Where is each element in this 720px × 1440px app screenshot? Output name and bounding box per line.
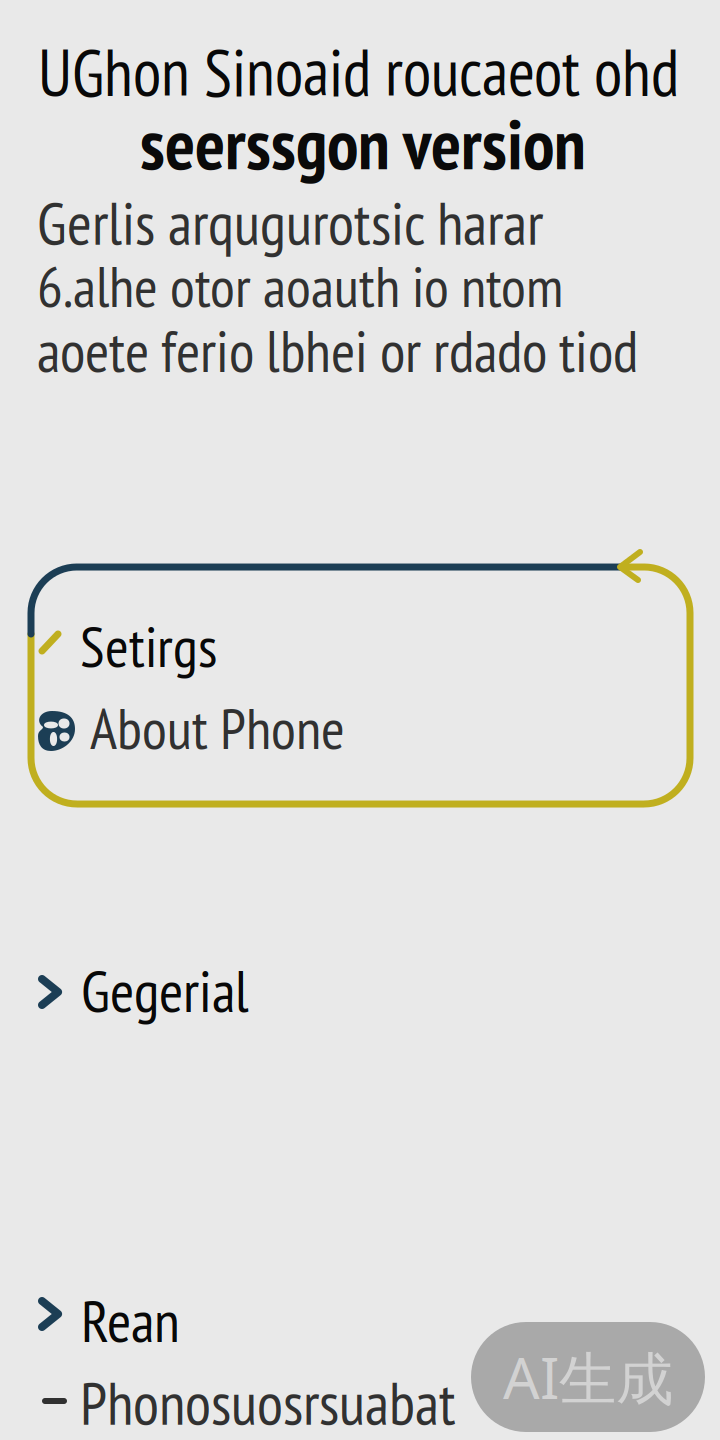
staticText: UGhon Sinoaid roucaeot ohd: [38, 29, 679, 114]
button[interactable]: Gegerial: [31, 952, 690, 1028]
button[interactable]: Phonosuosrsuabat: [31, 1366, 690, 1438]
staticText: Phonosuosrsuabat: [80, 1364, 456, 1440]
staticText: Gerlis arqugurotsic harar: [37, 184, 543, 261]
staticText: seerssgon version: [140, 97, 586, 189]
staticText: About Phone: [90, 691, 345, 765]
staticText: AI生成: [503, 1339, 673, 1415]
staticText: 6.alhe otor aoauth io ntom: [37, 249, 563, 323]
button[interactable]: Rean: [31, 1282, 690, 1354]
staticText: Setirgs: [80, 609, 217, 683]
staticText: Gegerial: [81, 952, 249, 1028]
staticText: Rean: [81, 1282, 180, 1358]
button[interactable]: Setirgs: [31, 608, 690, 680]
button[interactable]: About Phone: [31, 692, 690, 764]
staticText: aoete ferio lbhei or rdado tiod: [37, 312, 638, 388]
